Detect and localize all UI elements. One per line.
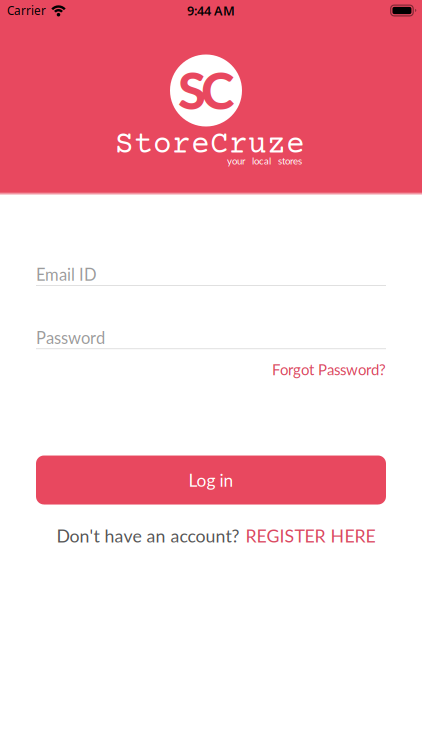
button[interactable]: Email ID: [36, 264, 386, 286]
button[interactable]: Log in: [36, 455, 386, 504]
staticText: local: [252, 155, 271, 166]
staticText: Carrier: [7, 2, 46, 18]
button[interactable]: Password: [36, 328, 386, 349]
staticText: Password: [36, 328, 105, 347]
staticText: REGISTER HERE: [245, 525, 375, 546]
staticText: Log in: [188, 470, 233, 490]
button[interactable]: Forgot Password?: [272, 360, 386, 378]
staticText: Forgot Password?: [272, 360, 386, 378]
staticText: StoreCruze: [115, 128, 305, 163]
staticText: SC: [178, 60, 234, 120]
staticText: 9:44 AM: [187, 2, 235, 19]
staticText: stores: [278, 155, 302, 166]
button[interactable]: REGISTER HERE: [245, 525, 375, 546]
staticText: your: [227, 155, 245, 166]
staticText: Don't have an account?: [56, 525, 239, 546]
staticText: Email ID: [36, 264, 97, 284]
